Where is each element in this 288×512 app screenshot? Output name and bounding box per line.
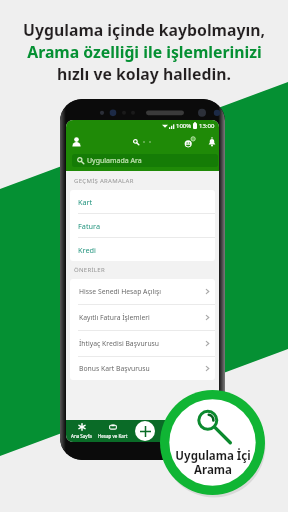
button[interactable]: Bildirimler xyxy=(203,133,219,150)
button[interactable]: Kart xyxy=(70,190,215,213)
button[interactable]: Kayıtlı Fatura İşlemleri xyxy=(70,305,215,330)
staticText: Uygulama İçi xyxy=(175,448,251,464)
button[interactable]: Arama xyxy=(133,139,151,145)
staticText: Kredi xyxy=(78,245,96,255)
button[interactable]: Ana Sayfa xyxy=(66,420,97,442)
staticText: Bonus Kart Başvurusu xyxy=(79,364,150,373)
staticText: Hesap ve Kart xyxy=(98,433,128,439)
staticText: hızlı ve kolay halledin. xyxy=(57,63,231,85)
staticText: GEÇMİŞ ARAMALAR xyxy=(74,177,134,185)
button[interactable]: İhtiyaç Kredisi Başvurusu xyxy=(70,331,215,356)
button[interactable]: Uygulamada Ara xyxy=(72,154,218,167)
staticText: Ana Sayfa xyxy=(71,433,92,439)
staticText: Arama xyxy=(194,462,232,478)
button[interactable]: Hesap ve Kart xyxy=(97,420,129,442)
button[interactable]: Bonus Kart Başvurusu xyxy=(70,357,215,380)
staticText: Hisse Senedi Hesap Açılışı xyxy=(79,287,161,296)
staticText: Uygulama içinde kaybolmayın, xyxy=(23,19,265,41)
staticText: Uygulamada Ara xyxy=(87,156,142,166)
staticText: 13:00 xyxy=(199,122,215,130)
staticText: Arama özelliği ile işlemlerinizi xyxy=(27,41,262,63)
button[interactable]: Asistan xyxy=(180,133,198,151)
staticText: Kart xyxy=(78,197,93,207)
button[interactable]: Hisse Senedi Hesap Açılışı xyxy=(70,279,215,304)
button[interactable]: Kredi xyxy=(70,238,215,261)
button[interactable]: Profil xyxy=(68,133,85,150)
staticText: İhtiyaç Kredisi Başvurusu xyxy=(79,339,160,348)
button[interactable]: Fatura xyxy=(70,214,215,237)
staticText: Fatura xyxy=(78,221,100,231)
staticText: 100% xyxy=(176,122,192,130)
staticText: ÖNERİLER xyxy=(74,266,105,274)
button[interactable]: Ekle xyxy=(135,421,155,441)
staticText: Kayıtlı Fatura İşlemleri xyxy=(79,313,150,322)
